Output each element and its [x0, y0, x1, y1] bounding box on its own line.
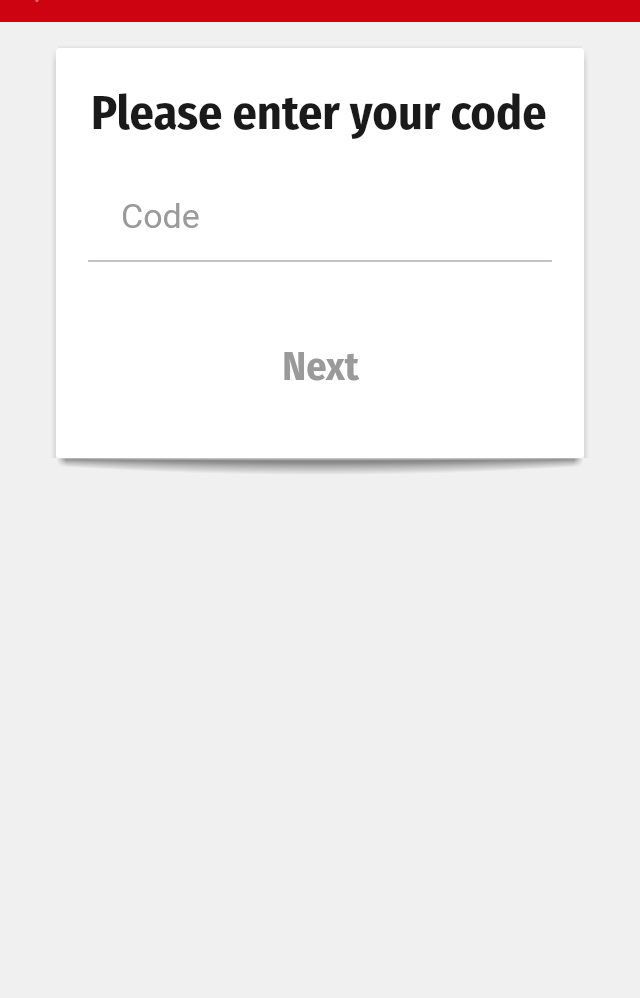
- button[interactable]: Next: [56, 337, 584, 397]
- staticText: Code: [121, 196, 200, 236]
- staticText: Next: [282, 343, 359, 391]
- button[interactable]: Code input field: [88, 176, 552, 262]
- staticText: Please enter your code: [91, 84, 547, 142]
